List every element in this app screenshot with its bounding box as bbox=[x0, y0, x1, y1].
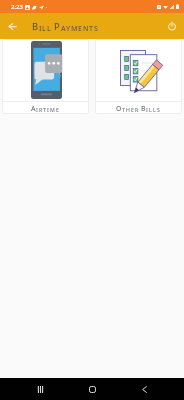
staticText: A bbox=[31, 104, 36, 113]
staticText: M bbox=[71, 23, 78, 33]
staticText: O bbox=[116, 104, 122, 113]
staticText: L bbox=[149, 106, 153, 113]
staticText: H bbox=[126, 106, 131, 113]
button[interactable]: Home bbox=[81, 378, 103, 400]
staticText: L bbox=[47, 23, 52, 33]
staticText: N bbox=[83, 23, 89, 33]
button[interactable]: O bbox=[95, 39, 182, 114]
staticText: B bbox=[141, 104, 146, 113]
staticText: A bbox=[61, 23, 66, 33]
staticText: M bbox=[50, 106, 56, 113]
button[interactable]: Back bbox=[0, 14, 24, 38]
staticText: T bbox=[43, 106, 47, 113]
staticText: I bbox=[36, 106, 39, 113]
staticText: E bbox=[56, 106, 60, 113]
staticText: E bbox=[131, 106, 135, 113]
staticText: R bbox=[135, 106, 139, 113]
staticText: B bbox=[32, 20, 39, 33]
staticText: 2:23 bbox=[11, 3, 23, 11]
button[interactable]: Recent apps bbox=[29, 378, 51, 400]
button[interactable]: Back bbox=[133, 378, 155, 400]
staticText: T bbox=[89, 23, 94, 33]
staticText: E bbox=[78, 23, 83, 33]
staticText: Y bbox=[66, 23, 71, 33]
staticText: S bbox=[157, 106, 161, 113]
staticText: I bbox=[47, 106, 50, 113]
staticText: P bbox=[54, 20, 61, 33]
staticText: S bbox=[94, 23, 99, 33]
button[interactable]: A bbox=[2, 39, 89, 114]
staticText: I bbox=[146, 106, 149, 113]
button[interactable]: Power bbox=[160, 14, 184, 38]
staticText: I bbox=[39, 23, 42, 33]
staticText: R bbox=[39, 106, 43, 113]
staticText: L bbox=[153, 106, 157, 113]
staticText: L bbox=[42, 23, 47, 33]
staticText: T bbox=[122, 106, 126, 113]
